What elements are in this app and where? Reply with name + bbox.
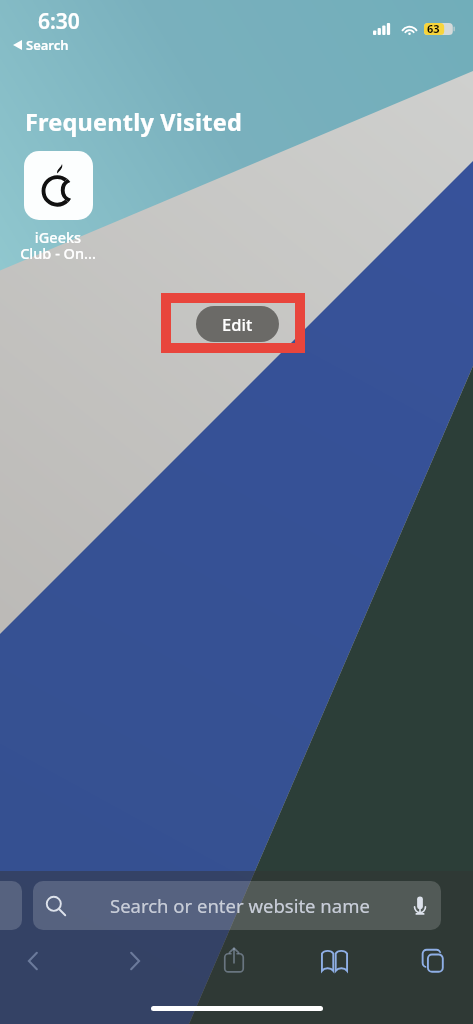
button[interactable]: Tabs (412, 941, 452, 981)
button[interactable]: Back (13, 941, 53, 981)
button[interactable]: Share (214, 940, 254, 980)
staticText: Search or enter website name (110, 893, 370, 918)
staticText: 6:30 (38, 7, 80, 36)
button[interactable] (0, 881, 22, 930)
staticText: Edit (222, 313, 253, 335)
button[interactable]: Bookmarks (314, 940, 354, 980)
button[interactable]: Edit (196, 306, 279, 342)
button[interactable]: Forward (115, 941, 155, 981)
staticText: Search (26, 36, 69, 54)
button[interactable]: iGeeks Club - On... (1, 151, 115, 264)
staticText: iGeeks Club - On... (20, 227, 96, 264)
staticText: Frequently Visited (25, 106, 242, 138)
button[interactable]: Search (13, 36, 69, 54)
button[interactable]: Search or enter website name (33, 881, 441, 930)
staticText: 63 (427, 21, 440, 36)
